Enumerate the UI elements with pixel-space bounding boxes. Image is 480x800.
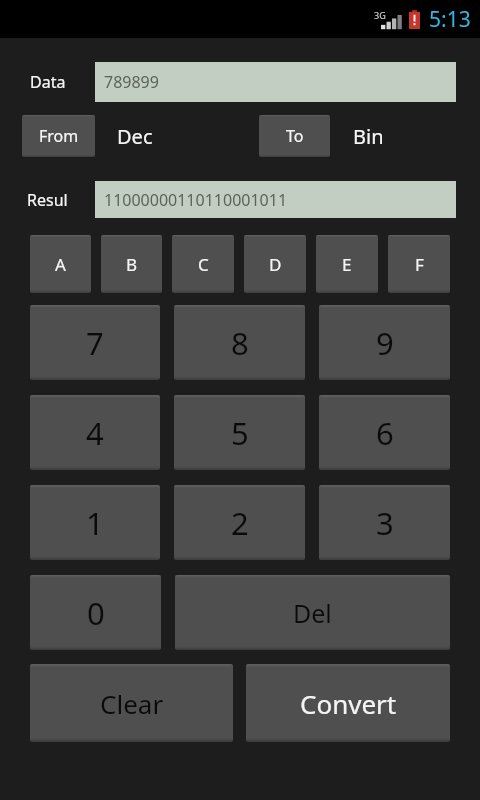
staticText: Data bbox=[30, 71, 66, 93]
button[interactable]: B bbox=[101, 235, 162, 293]
staticText: 6 bbox=[376, 412, 394, 454]
staticText: 8 bbox=[231, 322, 249, 364]
button[interactable]: 6 bbox=[319, 395, 450, 470]
staticText: 9 bbox=[376, 322, 394, 364]
staticText: 3G bbox=[374, 9, 386, 21]
staticText: C bbox=[198, 253, 209, 276]
button[interactable]: Clear bbox=[30, 664, 233, 742]
staticText: 2 bbox=[231, 502, 249, 544]
button[interactable]: E bbox=[316, 235, 378, 293]
staticText: 5 bbox=[231, 412, 249, 454]
button[interactable]: C bbox=[172, 235, 234, 293]
staticText: Del bbox=[293, 596, 332, 630]
button[interactable]: From bbox=[22, 115, 95, 157]
button[interactable]: A bbox=[30, 235, 91, 293]
staticText: From bbox=[39, 125, 79, 147]
button[interactable]: 0 bbox=[30, 575, 161, 650]
staticText: Resul bbox=[27, 189, 68, 211]
staticText: 11000000110110001011 bbox=[104, 189, 288, 211]
button[interactable]: F bbox=[388, 235, 450, 293]
button[interactable]: 9 bbox=[319, 305, 450, 380]
button[interactable]: 7 bbox=[30, 305, 160, 380]
staticText: Convert bbox=[300, 686, 397, 721]
staticText: To bbox=[286, 125, 304, 147]
button[interactable]: 11000000110110001011 bbox=[95, 181, 456, 218]
staticText: D bbox=[269, 253, 282, 276]
staticText: Clear bbox=[100, 686, 164, 721]
button[interactable]: 4 bbox=[30, 395, 160, 470]
staticText: 789899 bbox=[104, 71, 159, 93]
staticText: 1 bbox=[86, 502, 104, 544]
staticText: 7 bbox=[86, 322, 104, 364]
button[interactable]: 3 bbox=[319, 485, 450, 560]
staticText: F bbox=[415, 253, 424, 276]
other: Battery low bbox=[409, 10, 420, 29]
button[interactable]: 8 bbox=[174, 305, 305, 380]
staticText: A bbox=[55, 253, 66, 276]
button[interactable]: 789899 bbox=[95, 62, 456, 102]
other: 3G signal strength bbox=[374, 9, 401, 31]
staticText: 0 bbox=[87, 592, 105, 634]
button[interactable]: Del bbox=[175, 575, 450, 650]
button[interactable]: 5 bbox=[174, 395, 305, 470]
button[interactable]: 1 bbox=[30, 485, 160, 560]
staticText: E bbox=[342, 253, 352, 276]
staticText: Dec bbox=[117, 123, 153, 150]
button[interactable]: 2 bbox=[174, 485, 305, 560]
staticText: 3 bbox=[376, 502, 394, 544]
staticText: 5:13 bbox=[429, 5, 471, 34]
button[interactable]: D bbox=[244, 235, 306, 293]
staticText: Bin bbox=[353, 123, 384, 150]
staticText: B bbox=[126, 253, 138, 276]
button[interactable]: Convert bbox=[246, 664, 450, 742]
staticText: 4 bbox=[86, 412, 104, 454]
button[interactable]: To bbox=[259, 115, 330, 157]
